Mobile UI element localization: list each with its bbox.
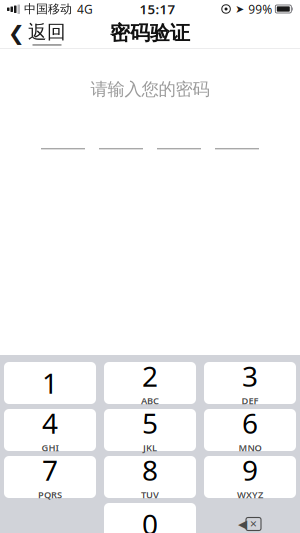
- button[interactable]: 1: [4, 362, 96, 404]
- button[interactable]: 9: [204, 456, 296, 498]
- staticText: 8: [142, 451, 158, 488]
- staticText: WXYZ: [237, 488, 263, 501]
- button[interactable]: 0: [104, 503, 196, 533]
- staticText: 99%: [248, 1, 272, 17]
- staticText: PQRS: [38, 488, 62, 501]
- staticText: ❮: [8, 22, 25, 44]
- staticText: 2: [142, 357, 158, 394]
- staticText: 15:17: [139, 0, 175, 18]
- button[interactable]: 4: [4, 409, 96, 451]
- button[interactable]: 5: [104, 409, 196, 451]
- staticText: 3: [242, 357, 258, 394]
- staticText: 4G: [77, 1, 93, 17]
- button[interactable]: Delete: [204, 503, 296, 533]
- staticText: GHI: [41, 441, 58, 454]
- staticText: ✕: [249, 519, 257, 529]
- button[interactable]: 2: [104, 362, 196, 404]
- staticText: ABC: [141, 394, 159, 407]
- staticText: 4: [42, 404, 58, 441]
- staticText: JKL: [143, 441, 157, 454]
- staticText: DEF: [241, 394, 258, 407]
- staticText: 返回: [28, 21, 66, 43]
- staticText: 请输入您的密码: [90, 79, 209, 100]
- staticText: 6: [242, 404, 258, 441]
- button[interactable]: 8: [104, 456, 196, 498]
- staticText: 7: [42, 451, 58, 488]
- button[interactable]: 3: [204, 362, 296, 404]
- staticText: TUV: [141, 488, 159, 501]
- staticText: MNO: [238, 441, 261, 454]
- button[interactable]: 6: [204, 409, 296, 451]
- button[interactable]: 7: [4, 456, 96, 498]
- staticText: 9: [242, 451, 258, 488]
- button[interactable]: ❮: [0, 17, 74, 49]
- staticText: 密码验证: [110, 21, 190, 45]
- staticText: ➤: [235, 3, 244, 15]
- staticText: ◀: [238, 517, 247, 531]
- staticText: 5: [142, 404, 158, 441]
- staticText: 中国移动: [24, 2, 72, 16]
- staticText: 1: [42, 364, 58, 402]
- staticText: 0: [142, 505, 158, 533]
